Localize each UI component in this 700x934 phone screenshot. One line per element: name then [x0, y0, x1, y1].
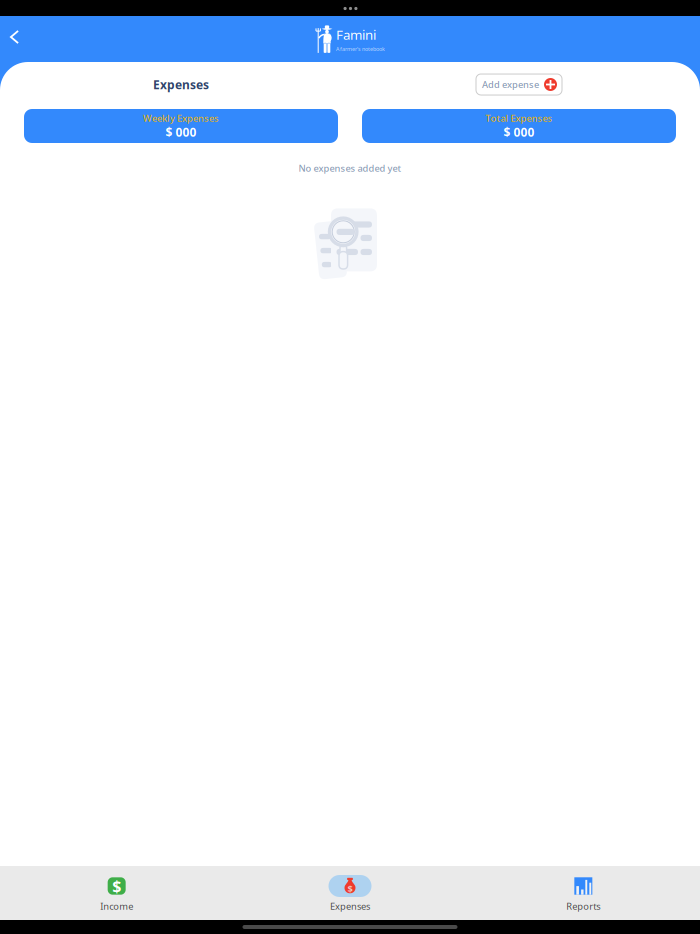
button[interactable]: $: [0, 866, 233, 920]
staticText: No expenses added yet: [298, 162, 401, 174]
staticText: Expenses: [153, 76, 209, 92]
staticText: $ 000: [503, 124, 534, 140]
button[interactable]: Add expense: [476, 74, 562, 95]
staticText: Expenses: [330, 900, 370, 912]
button[interactable]: Reports: [467, 866, 700, 920]
button[interactable]: $: [233, 866, 467, 920]
button[interactable]: Back: [0, 20, 31, 58]
staticText: Income: [100, 900, 133, 912]
button[interactable]: Weekly Expenses: [24, 109, 338, 143]
staticText: Weekly Expenses: [143, 112, 219, 124]
staticText: Reports: [566, 900, 600, 912]
button[interactable]: Total Expenses: [362, 109, 676, 143]
staticText: $: [112, 875, 121, 897]
staticText: A farmer's notebook: [336, 45, 385, 52]
staticText: $: [347, 883, 352, 895]
staticText: Total Expenses: [485, 112, 552, 124]
staticText: Famini: [336, 26, 376, 43]
staticText: Add expense: [482, 78, 539, 91]
staticText: $ 000: [165, 124, 196, 140]
